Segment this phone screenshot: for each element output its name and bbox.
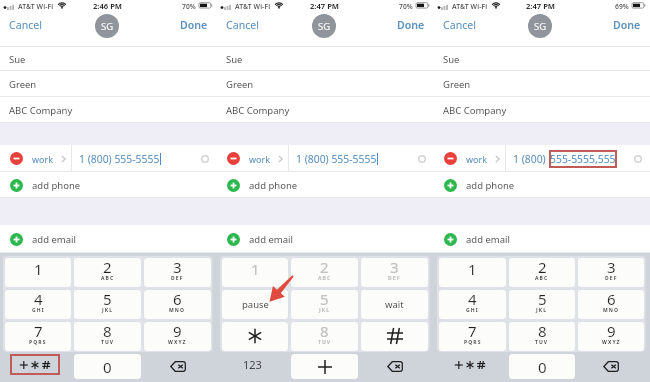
button[interactable]: 9 xyxy=(578,322,644,351)
button[interactable]: work xyxy=(217,145,434,172)
button[interactable]: Sue xyxy=(434,47,650,71)
staticText: MNO xyxy=(169,307,186,314)
staticText: 9 xyxy=(607,322,616,341)
staticText: 2 xyxy=(103,258,112,277)
button[interactable]: 1 xyxy=(222,258,288,287)
button[interactable]: Sue xyxy=(0,47,217,71)
staticText: add email xyxy=(32,233,76,246)
staticText: 1 xyxy=(34,259,43,279)
button[interactable]: Done xyxy=(178,15,210,35)
staticText: Green xyxy=(226,78,254,91)
staticText: GHI xyxy=(466,307,479,314)
button[interactable]: 2 xyxy=(509,258,575,287)
staticText: 69% xyxy=(615,2,629,11)
button[interactable]: 2 xyxy=(74,258,141,287)
staticText: AT&T Wi-Fi xyxy=(235,2,271,11)
button[interactable]: work xyxy=(434,145,650,172)
button[interactable]: Done xyxy=(611,15,643,35)
staticText: JKL xyxy=(102,307,114,314)
button[interactable] xyxy=(361,322,428,351)
staticText: add email xyxy=(466,233,510,246)
button[interactable]: 0 xyxy=(74,354,141,379)
button[interactable]: Delete xyxy=(578,354,644,379)
button[interactable]: add email xyxy=(434,225,650,253)
staticText: add phone xyxy=(249,179,298,192)
button[interactable]: Cancel xyxy=(224,15,261,35)
button[interactable]: ABC Company xyxy=(434,97,650,123)
button[interactable] xyxy=(5,354,71,379)
staticText: 2:47 PM xyxy=(526,1,556,11)
button[interactable]: add phone xyxy=(217,172,434,198)
staticText: 2:47 PM xyxy=(310,1,340,11)
button[interactable]: 2 xyxy=(291,258,358,287)
button[interactable]: Green xyxy=(434,71,650,97)
staticText: TUV xyxy=(101,339,115,346)
button[interactable]: 5 xyxy=(74,290,141,319)
button[interactable]: ABC Company xyxy=(217,97,434,123)
button[interactable]: add email xyxy=(217,225,434,253)
staticText: add phone xyxy=(466,179,515,192)
button[interactable]: pause xyxy=(222,290,288,319)
staticText: ABC Company xyxy=(443,104,507,117)
button[interactable]: 3 xyxy=(144,258,211,287)
staticText: Sue xyxy=(226,53,243,66)
button[interactable]: 3 xyxy=(578,258,644,287)
button[interactable]: 8 xyxy=(291,322,358,351)
button[interactable]: add email xyxy=(0,225,217,253)
button[interactable]: 7 xyxy=(5,322,71,351)
button[interactable]: 1 xyxy=(439,258,506,287)
button[interactable]: Done xyxy=(395,15,427,35)
button[interactable]: Sue xyxy=(217,47,434,71)
staticText: add email xyxy=(249,233,293,246)
button[interactable]: work xyxy=(0,145,217,172)
button[interactable]: Delete xyxy=(144,354,211,379)
button[interactable] xyxy=(222,322,288,351)
button[interactable]: 3 xyxy=(361,258,428,287)
button[interactable]: Delete xyxy=(361,354,428,379)
staticText: 7 xyxy=(468,322,477,341)
button[interactable]: Cancel xyxy=(441,15,478,35)
button[interactable]: add phone xyxy=(434,172,650,198)
staticText: Sue xyxy=(443,53,460,66)
button[interactable]: Cancel xyxy=(7,15,44,35)
button[interactable]: 7 xyxy=(439,322,506,351)
button[interactable] xyxy=(291,354,358,379)
button[interactable]: Contact photo xyxy=(95,14,119,38)
button[interactable]: wait xyxy=(361,290,428,319)
staticText: 2 xyxy=(538,258,547,277)
button[interactable]: 4 xyxy=(5,290,71,319)
staticText: SG xyxy=(534,20,547,33)
button[interactable]: 0 xyxy=(509,354,575,379)
button[interactable]: 123 xyxy=(222,354,288,379)
button[interactable]: Green xyxy=(0,71,217,97)
button[interactable]: 5 xyxy=(291,290,358,319)
button[interactable]: 8 xyxy=(509,322,575,351)
button[interactable]: Contact photo xyxy=(312,14,336,38)
button[interactable]: 4 xyxy=(439,290,506,319)
staticText: TUV xyxy=(318,339,332,346)
button[interactable]: ABC Company xyxy=(0,97,217,123)
staticText: WXYZ xyxy=(602,339,621,346)
staticText: Cancel xyxy=(443,18,476,32)
staticText: 8 xyxy=(538,322,547,341)
button[interactable]: 8 xyxy=(74,322,141,351)
button[interactable]: 5 xyxy=(509,290,575,319)
staticText: Cancel xyxy=(226,18,259,32)
button[interactable]: 9 xyxy=(144,322,211,351)
staticText: 8 xyxy=(103,322,112,341)
staticText: 3 xyxy=(607,258,616,277)
staticText: Sue xyxy=(9,53,26,66)
button[interactable]: Contact photo xyxy=(528,14,552,38)
button[interactable]: add phone xyxy=(0,172,217,198)
button[interactable]: 1 xyxy=(5,258,71,287)
button[interactable]: 6 xyxy=(144,290,211,319)
staticText: 3 xyxy=(173,258,182,277)
staticText: 5 xyxy=(538,290,547,309)
staticText: 8 xyxy=(320,322,329,341)
button[interactable]: Green xyxy=(217,71,434,97)
button[interactable] xyxy=(439,354,506,379)
staticText: ABC xyxy=(318,275,332,282)
button[interactable]: 6 xyxy=(578,290,644,319)
staticText: 70% xyxy=(399,2,413,11)
staticText: 6 xyxy=(173,290,182,309)
